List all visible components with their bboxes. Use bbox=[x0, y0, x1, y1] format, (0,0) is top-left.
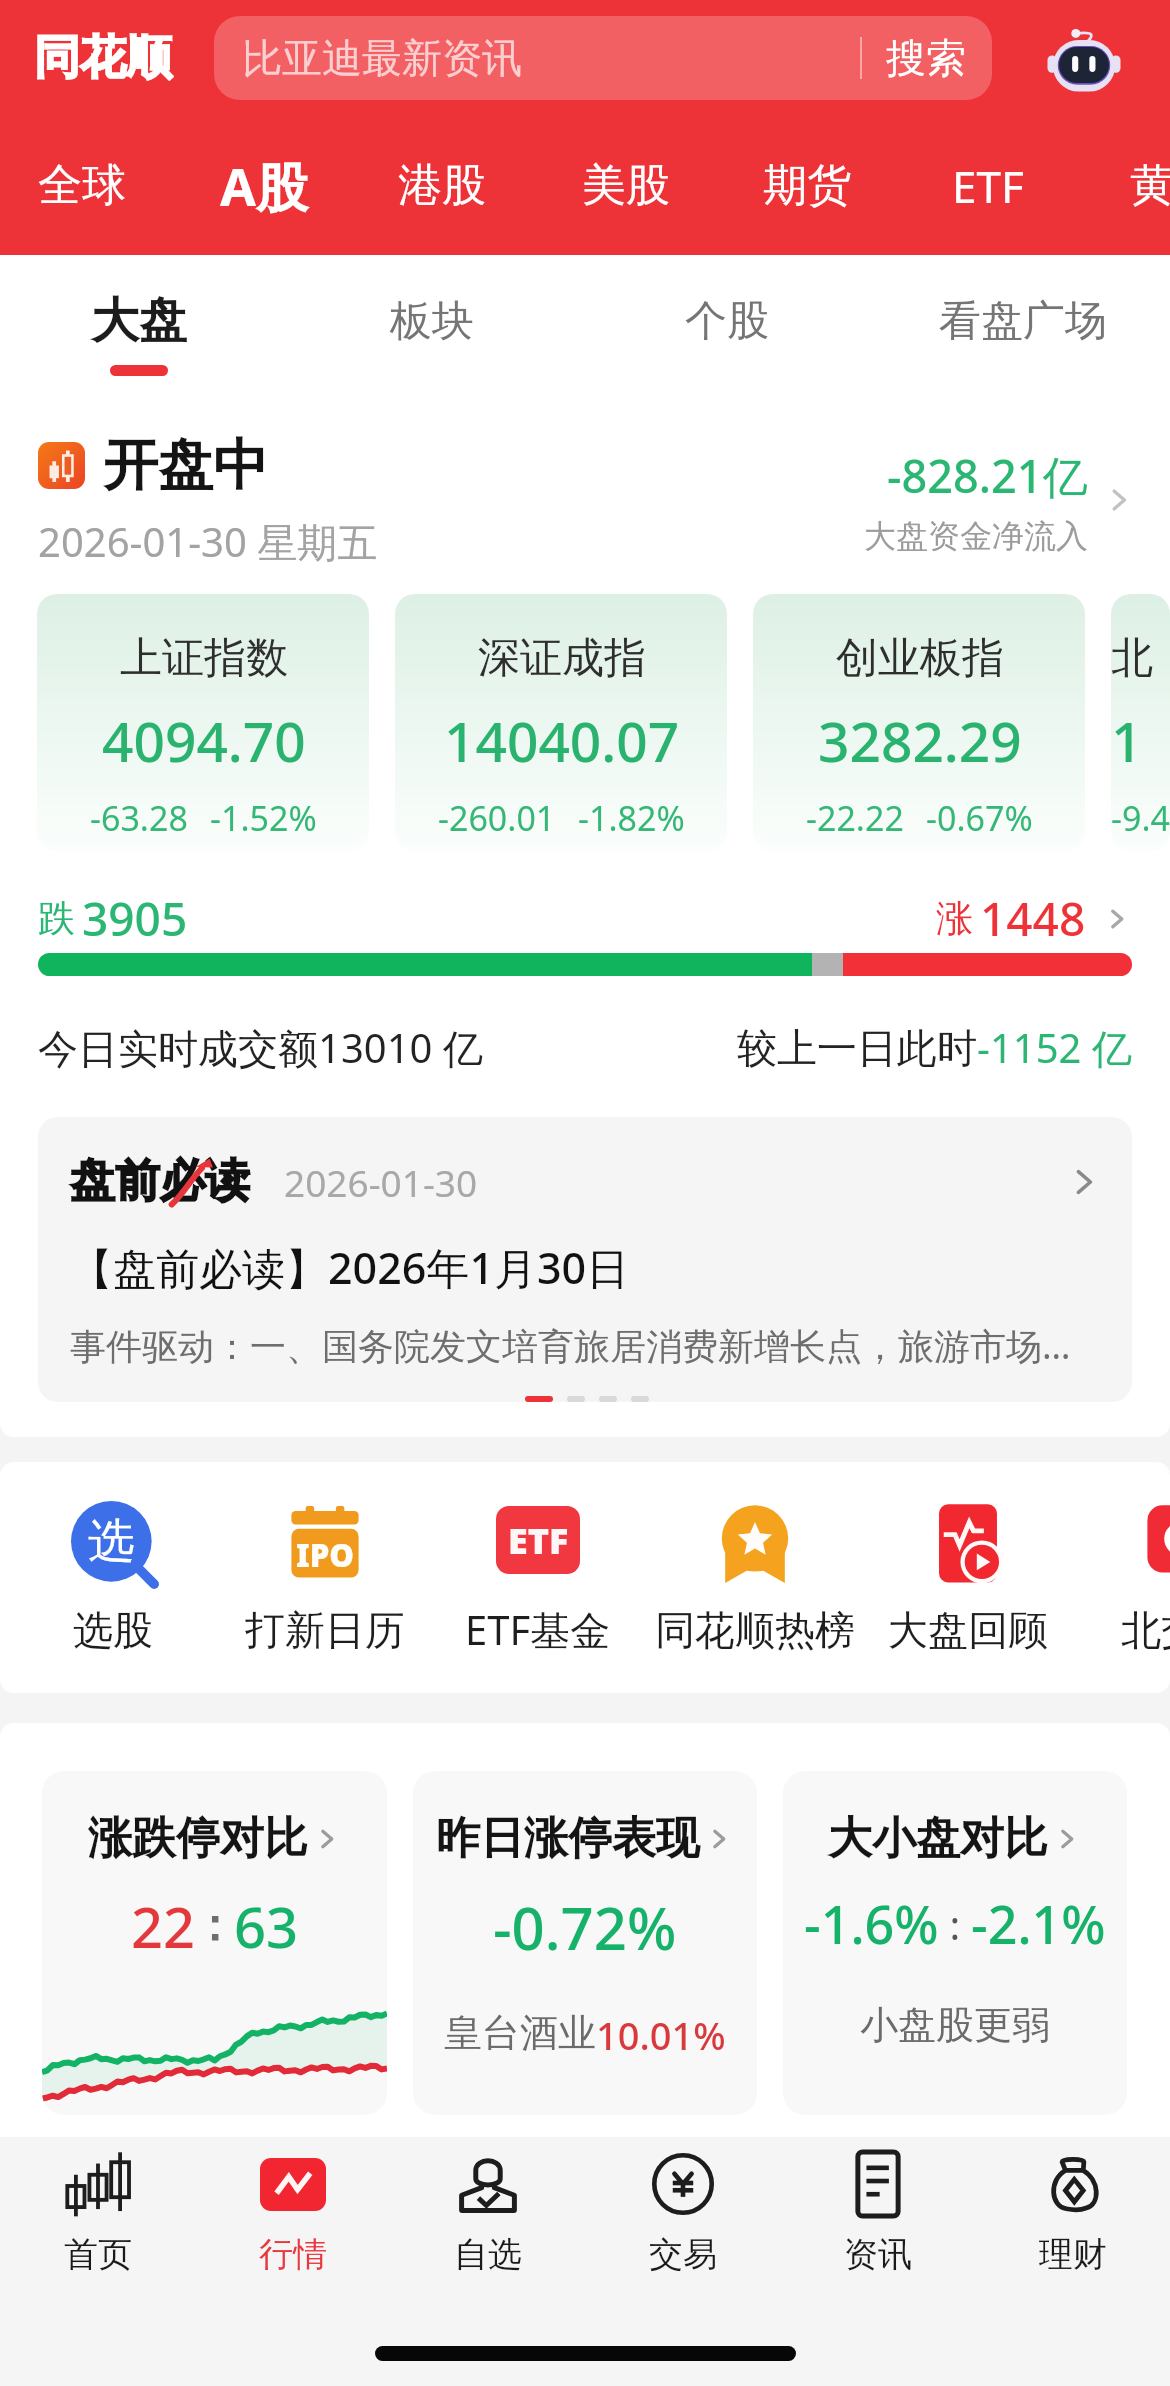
button[interactable]: ETF bbox=[898, 116, 1078, 255]
button[interactable]: 上证指数 bbox=[37, 594, 369, 851]
staticText: -2.1% bbox=[971, 1888, 1106, 1959]
button[interactable]: 盘前必读 bbox=[38, 1117, 1132, 1402]
staticText: -0.72% bbox=[493, 1888, 677, 1967]
staticText: 1448 bbox=[980, 887, 1086, 950]
button[interactable]: 首页 bbox=[0, 2137, 195, 2290]
button[interactable]: 港股 bbox=[352, 116, 532, 255]
staticText: 大盘回顾 bbox=[888, 1605, 1048, 1655]
button[interactable]: 美股 bbox=[536, 116, 716, 255]
staticText: 自选 bbox=[454, 2233, 522, 2276]
staticText: -1152 亿 bbox=[977, 1020, 1132, 1075]
button[interactable]: 自选 bbox=[390, 2137, 585, 2290]
staticText: 事件驱动：一、国务院发文培育旅居消费新增长点，旅游市场… bbox=[70, 1321, 1071, 1370]
staticText: 14040.07 bbox=[444, 703, 680, 778]
staticText: 【盘前必读】2026年1月30日 bbox=[70, 1238, 630, 1297]
staticText: 选 bbox=[88, 1512, 135, 1571]
staticText: 选股 bbox=[73, 1605, 153, 1655]
staticText: 4094.70 bbox=[102, 703, 306, 778]
button[interactable]: 创业板指 bbox=[753, 594, 1085, 851]
staticText: 板块 bbox=[390, 295, 474, 348]
staticText: IPO bbox=[296, 1534, 354, 1576]
button[interactable]: 涨跌停对比 bbox=[42, 1771, 387, 2115]
button[interactable]: 深证成指 bbox=[395, 594, 727, 851]
button[interactable]: A股 bbox=[174, 116, 354, 255]
staticText: A股 bbox=[220, 150, 308, 221]
button[interactable]: 选 bbox=[3, 1462, 223, 1693]
staticText: -63.28 bbox=[90, 795, 188, 841]
button[interactable]: 理财 bbox=[975, 2137, 1170, 2290]
staticText: 皇台酒业 bbox=[444, 2009, 596, 2057]
staticText: 昨日涨停表现 bbox=[436, 1811, 700, 1866]
button[interactable]: 昨日涨停表现 bbox=[413, 1771, 757, 2115]
staticText: 2026-01-30 bbox=[284, 1157, 478, 1207]
button[interactable]: 大盘回顾 bbox=[858, 1462, 1078, 1693]
staticText: 比亚迪最新资讯 bbox=[242, 33, 860, 83]
button[interactable]: AI助手 bbox=[1043, 17, 1125, 99]
staticText: 个股 bbox=[685, 295, 769, 348]
button[interactable]: 北交所 bbox=[1071, 1462, 1170, 1693]
staticText: 理财 bbox=[1039, 2233, 1107, 2276]
staticText: 跌 bbox=[38, 895, 75, 942]
staticText: 同花顺 bbox=[34, 29, 172, 87]
staticText: 22 bbox=[131, 1888, 196, 1964]
button[interactable]: 同花顺热榜 bbox=[645, 1462, 865, 1693]
staticText: 北交所 bbox=[1121, 1605, 1170, 1655]
button[interactable]: 行情 bbox=[195, 2137, 390, 2290]
button[interactable]: 板块 bbox=[292, 255, 572, 400]
staticText: 1188.22 bbox=[1111, 703, 1170, 778]
staticText: 大盘 bbox=[91, 291, 187, 351]
button[interactable]: 交易 bbox=[585, 2137, 780, 2290]
staticText: : bbox=[939, 1897, 971, 1951]
staticText: -22.22 bbox=[806, 795, 904, 841]
staticText: 涨跌停对比 bbox=[88, 1811, 308, 1866]
staticText: 资讯 bbox=[844, 2233, 912, 2276]
staticText: 较上一日此时 bbox=[737, 1023, 977, 1073]
staticText: 10.01% bbox=[596, 2009, 726, 2061]
staticText: -260.01 bbox=[438, 795, 556, 841]
staticText: -1.82% bbox=[578, 795, 685, 841]
staticText: 北证50 bbox=[1111, 632, 1170, 685]
staticText: ETF bbox=[508, 1516, 569, 1565]
staticText: -1.52% bbox=[210, 795, 317, 841]
button[interactable]: 全球 bbox=[0, 116, 172, 255]
button[interactable]: 北证50 bbox=[1111, 594, 1170, 851]
staticText: 63 bbox=[234, 1888, 299, 1964]
staticText: 首页 bbox=[64, 2233, 132, 2276]
staticText: 交易 bbox=[649, 2233, 717, 2276]
button[interactable]: 黄 bbox=[1062, 116, 1170, 255]
button[interactable]: 看盘广场 bbox=[883, 255, 1163, 400]
button[interactable]: 比亚迪最新资讯 bbox=[214, 16, 992, 100]
staticText: ETF基金 bbox=[465, 1602, 611, 1657]
staticText: -0.67% bbox=[926, 795, 1033, 841]
staticText: -828.21亿 bbox=[887, 445, 1088, 506]
staticText: 大盘资金净流入 bbox=[864, 516, 1088, 556]
button[interactable]: ETF bbox=[428, 1462, 648, 1693]
staticText: 美股 bbox=[582, 158, 670, 213]
staticText: 今日实时成交额13010 亿 bbox=[38, 1020, 483, 1075]
staticText: 期货 bbox=[763, 158, 851, 213]
staticText: 黄 bbox=[1130, 158, 1170, 213]
button[interactable]: 期货 bbox=[717, 116, 897, 255]
staticText: 同花顺热榜 bbox=[655, 1605, 855, 1655]
staticText: 开盘中 bbox=[103, 431, 268, 500]
button[interactable]: 个股 bbox=[587, 255, 867, 400]
staticText: 看盘广场 bbox=[939, 295, 1107, 348]
staticText: 3905 bbox=[82, 887, 188, 950]
staticText: 涨 bbox=[936, 895, 973, 942]
staticText: 打新日历 bbox=[245, 1605, 405, 1655]
staticText: ETF bbox=[952, 156, 1024, 216]
button[interactable]: 大小盘对比 bbox=[783, 1771, 1127, 2115]
staticText: 港股 bbox=[398, 158, 486, 213]
staticText: 深证成指 bbox=[478, 632, 646, 685]
staticText: 小盘股更弱 bbox=[860, 2001, 1050, 2049]
button[interactable]: 大盘 bbox=[0, 255, 279, 400]
button[interactable]: IPO bbox=[215, 1462, 435, 1693]
staticText: 2026-01-30 星期五 bbox=[38, 514, 378, 569]
staticText: 大小盘对比 bbox=[828, 1811, 1048, 1866]
staticText: -9.40 bbox=[1111, 795, 1170, 841]
button[interactable]: 资讯 bbox=[780, 2137, 975, 2290]
staticText: 行情 bbox=[259, 2233, 327, 2276]
staticText: 上证指数 bbox=[120, 632, 288, 685]
staticText: 3282.29 bbox=[818, 703, 1022, 778]
staticText: 盘前必读 bbox=[70, 1153, 250, 1210]
